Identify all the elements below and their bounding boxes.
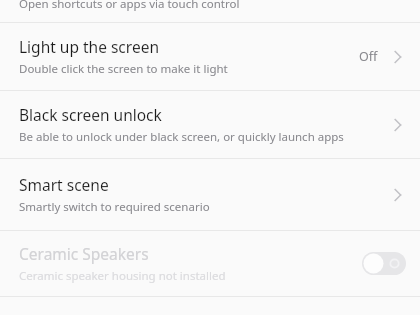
staticText: Smart scene xyxy=(19,174,109,195)
staticText: Light up the screen xyxy=(19,36,159,57)
button[interactable]: Light up the screen xyxy=(0,23,420,90)
button[interactable]: Black screen unlock xyxy=(0,91,420,158)
button[interactable]: Ceramic Speakers toggle, off, disabled xyxy=(362,252,406,275)
staticText: Black screen unlock xyxy=(19,104,162,125)
staticText: Off xyxy=(359,48,378,65)
staticText: Open shortcuts or apps via touch control xyxy=(19,0,240,12)
button[interactable]: Smart scene xyxy=(0,159,420,230)
button[interactable]: Open shortcuts or apps via touch control xyxy=(0,0,420,22)
staticText: Be able to unlock under black screen, or… xyxy=(19,129,344,145)
staticText: Smartly switch to required scenario xyxy=(19,199,210,215)
staticText: Double click the screen to make it light xyxy=(19,61,228,77)
button[interactable]: Ceramic Speakers xyxy=(0,231,420,296)
staticText: Ceramic speaker housing not installed xyxy=(19,268,226,284)
staticText: Ceramic Speakers xyxy=(19,243,149,264)
